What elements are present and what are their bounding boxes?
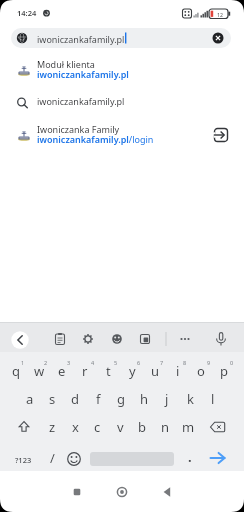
button[interactable]: m [177, 415, 199, 439]
button[interactable] [62, 478, 92, 506]
staticText: s [49, 390, 56, 408]
button[interactable] [13, 415, 37, 439]
button[interactable]: j [156, 387, 178, 411]
button[interactable] [11, 28, 231, 48]
staticText: i [176, 362, 180, 380]
button[interactable] [77, 328, 99, 350]
staticText: f [96, 390, 101, 408]
button[interactable]: c [86, 415, 108, 439]
button[interactable]: k [179, 387, 201, 411]
button[interactable] [0, 119, 244, 153]
button[interactable] [0, 55, 244, 87]
button[interactable]: n [154, 415, 176, 439]
staticText: 8 [183, 359, 187, 366]
staticText: 6 [137, 359, 141, 366]
button[interactable] [206, 26, 230, 50]
staticText: y [129, 362, 136, 380]
staticText: a [26, 390, 34, 408]
button[interactable]: u [144, 359, 166, 383]
staticText: iwoniczankafamily.pl/login [37, 133, 154, 145]
staticText: k [187, 390, 194, 408]
button[interactable] [0, 89, 244, 115]
staticText: 1 [21, 359, 25, 366]
button[interactable]: e [51, 359, 73, 383]
staticText: 7 [160, 359, 164, 366]
staticText: 14:24 [17, 8, 37, 18]
staticText: j [165, 390, 169, 408]
button[interactable] [10, 328, 32, 350]
button[interactable]: x [64, 415, 86, 439]
button[interactable]: w [28, 359, 50, 383]
button[interactable]: g [110, 387, 132, 411]
staticText: c [94, 418, 101, 436]
staticText: Moduł klienta [37, 58, 95, 70]
staticText: 3 [67, 359, 71, 366]
button[interactable] [152, 478, 182, 506]
staticText: iwoniczankafamily.pl [37, 68, 129, 80]
staticText: u [151, 362, 160, 380]
staticText: v [117, 418, 124, 436]
button[interactable]: . [179, 445, 201, 469]
staticText: 9 [207, 359, 211, 366]
staticText: r [82, 362, 88, 380]
staticText: 0 [230, 359, 234, 366]
button[interactable] [174, 328, 196, 350]
button[interactable] [8, 449, 38, 469]
staticText: w [34, 362, 45, 380]
staticText: t [106, 362, 111, 380]
button[interactable]: i [167, 359, 189, 383]
staticText: 4 [91, 359, 95, 366]
button[interactable]: z [41, 415, 63, 439]
staticText: Iwoniczanka Family [37, 123, 120, 135]
staticText: x [72, 418, 79, 436]
staticText: 2 [44, 359, 48, 366]
staticText: b [138, 418, 146, 436]
button[interactable]: y [121, 359, 143, 383]
button[interactable]: l [202, 387, 224, 411]
staticText: n [161, 418, 170, 436]
staticText: iwoniczankafamily.pl [37, 95, 125, 107]
button[interactable]: f [87, 387, 109, 411]
button[interactable]: b [131, 415, 153, 439]
button[interactable] [107, 478, 137, 506]
button[interactable] [210, 328, 232, 350]
button[interactable] [205, 415, 229, 439]
staticText: p [220, 362, 228, 380]
button[interactable] [62, 447, 86, 470]
staticText: l [211, 390, 215, 408]
button[interactable]: p [213, 359, 235, 383]
staticText: m [182, 418, 195, 436]
button[interactable]: d [64, 387, 86, 411]
staticText: ?123 [15, 455, 32, 465]
staticText: h [140, 390, 149, 408]
staticText: q [12, 362, 20, 380]
staticText: 12 [217, 11, 223, 18]
staticText: d [71, 390, 79, 408]
button[interactable] [206, 447, 232, 470]
staticText: / [50, 449, 55, 467]
button[interactable] [106, 328, 128, 350]
button[interactable]: a [19, 387, 41, 411]
button[interactable]: r [74, 359, 96, 383]
button[interactable] [49, 328, 71, 350]
button[interactable]: t [97, 359, 119, 383]
button[interactable]: v [109, 415, 131, 439]
button[interactable]: s [41, 387, 63, 411]
staticText: e [58, 362, 66, 380]
button[interactable]: / [41, 446, 63, 470]
staticText: 5 [114, 359, 118, 366]
staticText: iwoniczankafamily.pl [37, 33, 125, 45]
staticText: z [49, 418, 56, 436]
button[interactable]: o [190, 359, 212, 383]
button[interactable]: q [5, 359, 27, 383]
button[interactable]: h [133, 387, 155, 411]
staticText: . [188, 448, 192, 466]
staticText: o [197, 362, 205, 380]
staticText: g [117, 390, 125, 408]
button[interactable] [134, 328, 156, 350]
